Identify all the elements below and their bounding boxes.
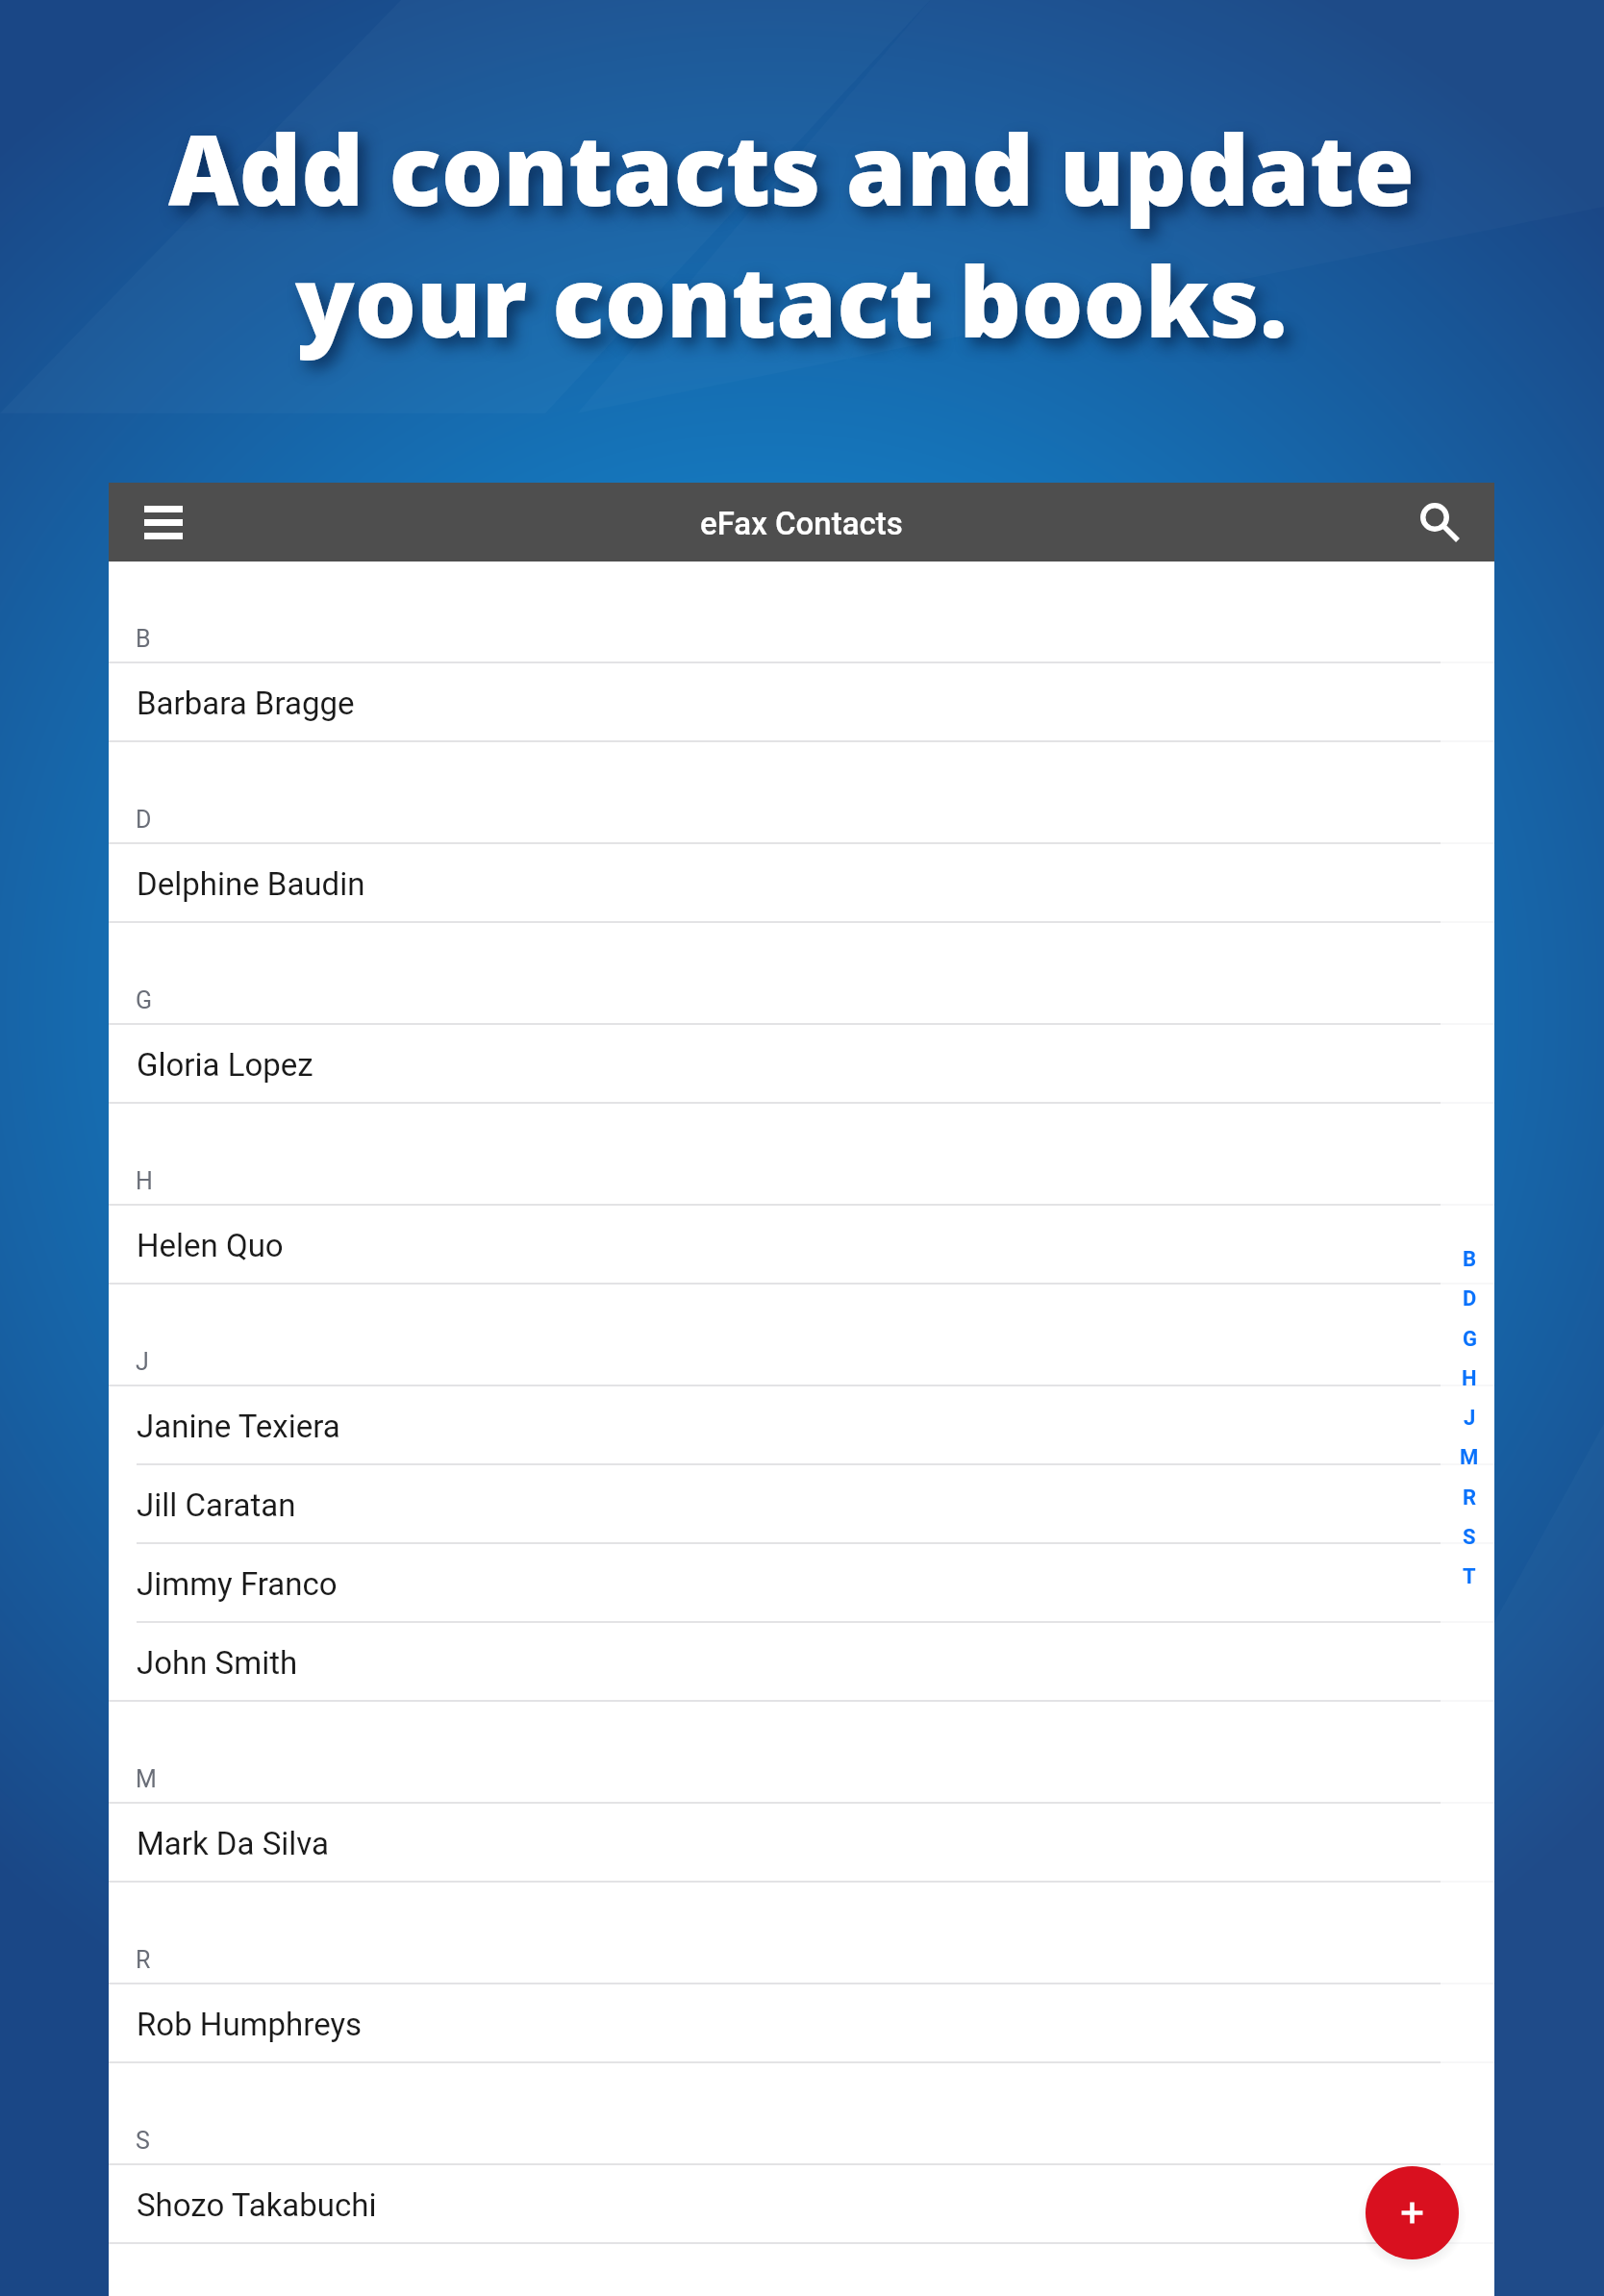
staticText: D xyxy=(136,806,152,834)
staticText: S xyxy=(136,2127,150,2155)
button[interactable]: Mark Da Silva xyxy=(109,1804,1494,1881)
button[interactable]: Barbara Bragge xyxy=(109,663,1494,740)
button[interactable]: Add contact xyxy=(1366,2166,1459,2259)
button[interactable]: B xyxy=(1450,1239,1489,1279)
staticText: T xyxy=(1463,1564,1476,1589)
staticText: Jimmy Franco xyxy=(137,1565,338,1603)
staticText: Jill Caratan xyxy=(137,1486,296,1524)
staticText: H xyxy=(136,1167,153,1195)
button[interactable]: Janine Texiera xyxy=(109,1386,1494,1463)
staticText: M xyxy=(1460,1445,1479,1470)
staticText: S xyxy=(1463,1525,1476,1550)
staticText: H xyxy=(1462,1366,1477,1391)
button[interactable]: Search xyxy=(1411,488,1468,556)
button[interactable]: Rob Humphreys xyxy=(109,1984,1494,2061)
staticText: B xyxy=(1463,1247,1477,1272)
button[interactable]: Helen Quo xyxy=(109,1206,1494,1283)
staticText: M xyxy=(136,1765,157,1793)
button[interactable]: D xyxy=(1450,1279,1489,1318)
button[interactable]: Open navigation menu xyxy=(135,488,192,556)
staticText: G xyxy=(136,986,153,1014)
staticText: Shozo Takabuchi xyxy=(137,2186,377,2224)
button[interactable]: Shozo Takabuchi xyxy=(109,2165,1494,2242)
staticText: John Smith xyxy=(137,1644,298,1682)
button[interactable]: T xyxy=(1450,1557,1489,1596)
staticText: Barbara Bragge xyxy=(137,685,355,722)
staticText: B xyxy=(136,625,151,653)
staticText: Mark Da Silva xyxy=(137,1825,329,1862)
staticText: R xyxy=(1463,1485,1477,1510)
staticText: Add contacts and update your contact boo… xyxy=(168,102,1415,365)
staticText: D xyxy=(1463,1286,1477,1311)
button[interactable]: John Smith xyxy=(109,1623,1494,1700)
button[interactable]: G xyxy=(1450,1319,1489,1359)
staticText: Delphine Baudin xyxy=(137,865,365,903)
staticText: R xyxy=(136,1946,151,1974)
button[interactable]: Jill Caratan xyxy=(109,1465,1494,1542)
staticText: Janine Texiera xyxy=(137,1408,340,1445)
staticText: G xyxy=(1463,1327,1477,1352)
staticText: eFax Contacts xyxy=(700,505,903,542)
staticText: Helen Quo xyxy=(137,1227,284,1264)
staticText: Gloria Lopez xyxy=(137,1046,313,1084)
staticText: J xyxy=(136,1348,149,1376)
staticText: J xyxy=(1464,1406,1476,1431)
button[interactable]: H xyxy=(1450,1359,1489,1398)
button[interactable]: R xyxy=(1450,1478,1489,1517)
button[interactable]: Jimmy Franco xyxy=(109,1544,1494,1621)
button[interactable]: Delphine Baudin xyxy=(109,844,1494,921)
button[interactable]: S xyxy=(1450,1517,1489,1557)
button[interactable]: Gloria Lopez xyxy=(109,1025,1494,1102)
button[interactable]: M xyxy=(1450,1437,1489,1477)
button[interactable]: J xyxy=(1450,1398,1489,1437)
staticText: Rob Humphreys xyxy=(137,2006,363,2043)
